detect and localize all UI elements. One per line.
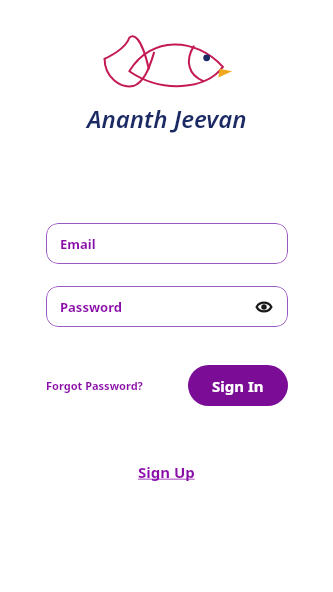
staticText: Ananth Jeevan [87,102,247,135]
staticText: Sign Up [138,462,195,482]
staticText: Sign In [212,376,264,396]
button[interactable]: Email [46,223,288,264]
button[interactable]: Sign In [188,365,288,406]
button[interactable]: Show password [254,297,274,317]
button[interactable]: Password [46,286,288,327]
staticText: Email [60,235,96,253]
button[interactable]: Forgot Password? [46,372,143,399]
staticText: Password [60,298,122,316]
button[interactable]: Sign Up [130,458,203,486]
staticText: Forgot Password? [46,378,143,393]
